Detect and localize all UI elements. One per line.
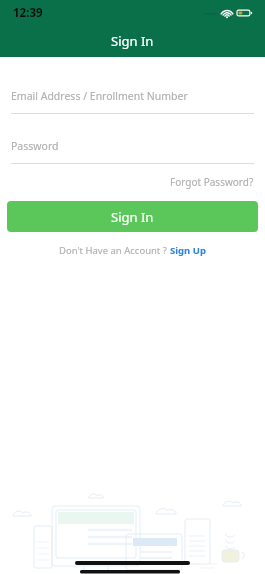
staticText: Email Address / Enrollment Number — [11, 89, 188, 103]
staticText: Sign Up — [170, 244, 206, 257]
staticText: Password — [11, 139, 59, 153]
button[interactable]: Email Address / Enrollment Number — [11, 89, 254, 114]
button[interactable]: Forgot Password? — [167, 172, 257, 192]
staticText: Don't Have an Account ? — [59, 244, 167, 257]
staticText: Sign In — [111, 32, 154, 50]
button[interactable]: Password — [11, 139, 254, 164]
staticText: Forgot Password? — [170, 175, 254, 189]
staticText: Sign In — [111, 208, 154, 226]
button[interactable]: Sign In — [7, 201, 258, 232]
other: Battery — [237, 9, 252, 17]
other: Wi-Fi — [221, 9, 233, 18]
button[interactable]: Sign Up — [170, 244, 206, 257]
staticText: 12:39 — [13, 5, 43, 21]
